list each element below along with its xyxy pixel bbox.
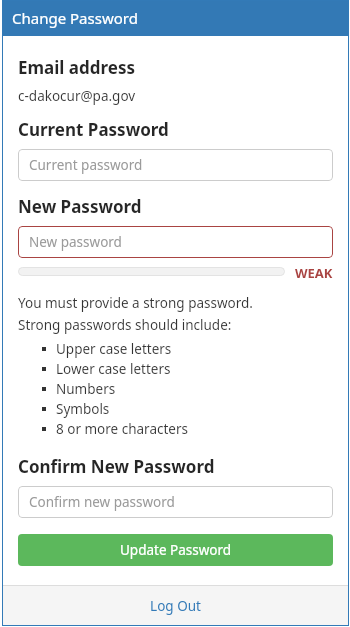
button[interactable]: Log Out bbox=[2, 586, 349, 626]
staticText: Current password bbox=[29, 156, 143, 174]
staticText: Lower case letters bbox=[56, 360, 171, 378]
staticText: Email address bbox=[18, 56, 135, 79]
staticText: Current Password bbox=[18, 118, 169, 141]
staticText: Confirm New Password bbox=[18, 455, 215, 478]
staticText: Log Out bbox=[150, 597, 201, 615]
staticText: Strong passwords should include: bbox=[18, 316, 232, 334]
staticText: Upper case letters bbox=[56, 340, 172, 358]
staticText: You must provide a strong password. bbox=[18, 294, 253, 312]
button[interactable]: New password bbox=[18, 226, 333, 258]
button[interactable]: Update Password bbox=[18, 534, 333, 566]
staticText: Symbols bbox=[56, 400, 110, 418]
staticText: Confirm new password bbox=[29, 493, 175, 511]
staticText: c-dakocur@pa.gov bbox=[18, 87, 136, 105]
button[interactable]: Confirm new password bbox=[18, 486, 333, 518]
button[interactable]: Current password bbox=[18, 149, 333, 181]
staticText: Update Password bbox=[120, 541, 232, 559]
staticText: WEAK bbox=[295, 264, 333, 278]
staticText: 8 or more characters bbox=[56, 420, 188, 438]
staticText: New password bbox=[29, 233, 122, 251]
staticText: Change Password bbox=[12, 8, 138, 28]
staticText: New Password bbox=[18, 195, 142, 218]
staticText: Numbers bbox=[56, 380, 116, 398]
